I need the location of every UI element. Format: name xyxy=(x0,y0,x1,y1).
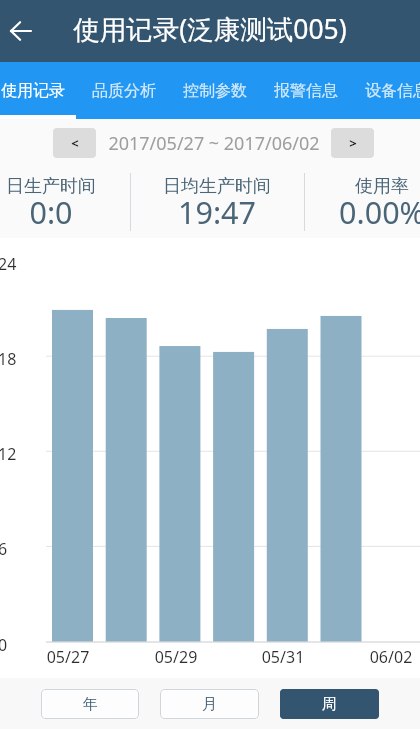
staticText: 05/29 xyxy=(141,646,211,668)
staticText: 报警信息 xyxy=(274,81,338,101)
button[interactable]: Next period xyxy=(331,128,374,158)
button[interactable]: 月 xyxy=(160,689,259,719)
staticText: 05/27 xyxy=(33,646,103,668)
button[interactable]: Back xyxy=(0,0,42,62)
staticText: 2017/05/27 ~ 2017/06/02 xyxy=(108,131,320,156)
button[interactable]: 设备信息 xyxy=(351,62,420,119)
staticText: 使用记录 xyxy=(1,81,65,101)
staticText: 0 xyxy=(0,634,28,656)
staticText: 月 xyxy=(202,695,217,714)
staticText: > xyxy=(349,134,357,152)
staticText: 周 xyxy=(322,695,337,714)
staticText: 24 xyxy=(0,253,28,275)
staticText: 日均生产时间 xyxy=(163,175,271,198)
staticText: 品质分析 xyxy=(92,81,156,101)
staticText: 日生产时间 xyxy=(6,175,96,198)
button[interactable]: 控制参数 xyxy=(169,62,260,119)
button[interactable]: Previous period xyxy=(53,128,96,158)
staticText: 使用记录(泛康测试005) xyxy=(73,11,347,47)
staticText: 设备信息 xyxy=(365,81,420,101)
button[interactable]: 年 xyxy=(41,689,139,719)
staticText: 18 xyxy=(0,348,28,370)
button[interactable]: 报警信息 xyxy=(260,62,351,119)
staticText: 使用率 xyxy=(355,175,409,198)
staticText: 05/31 xyxy=(248,646,318,668)
button[interactable]: 周 xyxy=(280,689,379,719)
staticText: 年 xyxy=(83,695,98,714)
staticText: 6 xyxy=(0,538,28,560)
staticText: 12 xyxy=(0,443,28,465)
staticText: 0.00% xyxy=(339,191,420,233)
button[interactable]: 使用记录 xyxy=(0,62,78,119)
staticText: 0:0 xyxy=(29,191,73,233)
button[interactable]: 品质分析 xyxy=(78,62,169,119)
staticText: 06/02 xyxy=(356,646,420,668)
staticText: 控制参数 xyxy=(183,81,247,101)
staticText: 19:47 xyxy=(178,191,256,233)
staticText: < xyxy=(71,134,79,152)
